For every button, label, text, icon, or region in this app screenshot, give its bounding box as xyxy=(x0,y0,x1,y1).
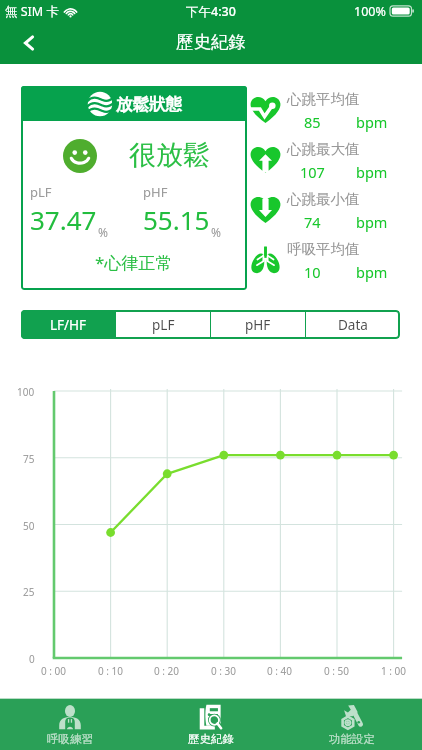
staticText: 10 xyxy=(304,262,321,282)
staticText: 0 : 00 xyxy=(41,664,67,678)
button[interactable]: Data xyxy=(306,310,400,339)
staticText: 下午4:30 xyxy=(186,3,236,20)
staticText: 0 : 30 xyxy=(211,664,237,678)
staticText: bpm xyxy=(356,112,388,132)
button[interactable]: 呼吸練習 xyxy=(0,699,140,750)
staticText: 無 SIM 卡 xyxy=(5,3,59,20)
button[interactable]: 功能設定 xyxy=(281,699,422,750)
staticText: 107 xyxy=(300,162,325,182)
staticText: % xyxy=(211,224,221,240)
staticText: 心跳最大值 xyxy=(287,140,360,158)
staticText: 1 : 00 xyxy=(381,664,407,678)
button[interactable]: 歷史紀錄 xyxy=(140,699,281,750)
staticText: Data xyxy=(338,316,368,334)
staticText: 50 xyxy=(23,519,35,533)
staticText: 0 xyxy=(29,652,35,666)
staticText: 100% xyxy=(354,3,386,20)
button[interactable]: pLF xyxy=(116,310,210,339)
staticText: 0 : 20 xyxy=(154,664,180,678)
button[interactable]: pHF xyxy=(211,310,305,339)
staticText: bpm xyxy=(356,262,388,282)
staticText: 很放鬆 xyxy=(129,138,210,172)
staticText: % xyxy=(98,224,108,240)
staticText: 呼吸練習 xyxy=(47,732,93,746)
button[interactable]: LF/HF xyxy=(21,310,115,339)
staticText: 85 xyxy=(304,112,321,132)
staticText: 74 xyxy=(304,212,321,232)
staticText: 功能設定 xyxy=(329,732,375,746)
staticText: pHF xyxy=(143,183,168,201)
staticText: 呼吸平均值 xyxy=(287,240,360,258)
staticText: bpm xyxy=(356,162,388,182)
staticText: 0 : 50 xyxy=(324,664,350,678)
staticText: 心跳最小值 xyxy=(287,190,360,208)
staticText: 歷史紀錄 xyxy=(176,31,246,53)
staticText: 心跳平均值 xyxy=(287,90,360,108)
staticText: 0 : 40 xyxy=(267,664,293,678)
staticText: 55.15 xyxy=(143,202,210,237)
staticText: bpm xyxy=(356,212,388,232)
staticText: pLF xyxy=(152,316,175,334)
staticText: *心律正常 xyxy=(95,251,173,274)
staticText: 25 xyxy=(23,585,35,599)
staticText: 放鬆狀態 xyxy=(116,94,182,115)
staticText: LF/HF xyxy=(50,316,87,334)
staticText: pLF xyxy=(30,183,52,201)
staticText: 0 : 10 xyxy=(98,664,124,678)
staticText: pHF xyxy=(245,316,271,334)
staticText: 75 xyxy=(23,452,35,466)
staticText: 37.47 xyxy=(30,202,97,237)
staticText: 歷史紀錄 xyxy=(188,732,234,746)
staticText: 100 xyxy=(17,385,35,399)
button[interactable]: Back xyxy=(10,24,48,62)
